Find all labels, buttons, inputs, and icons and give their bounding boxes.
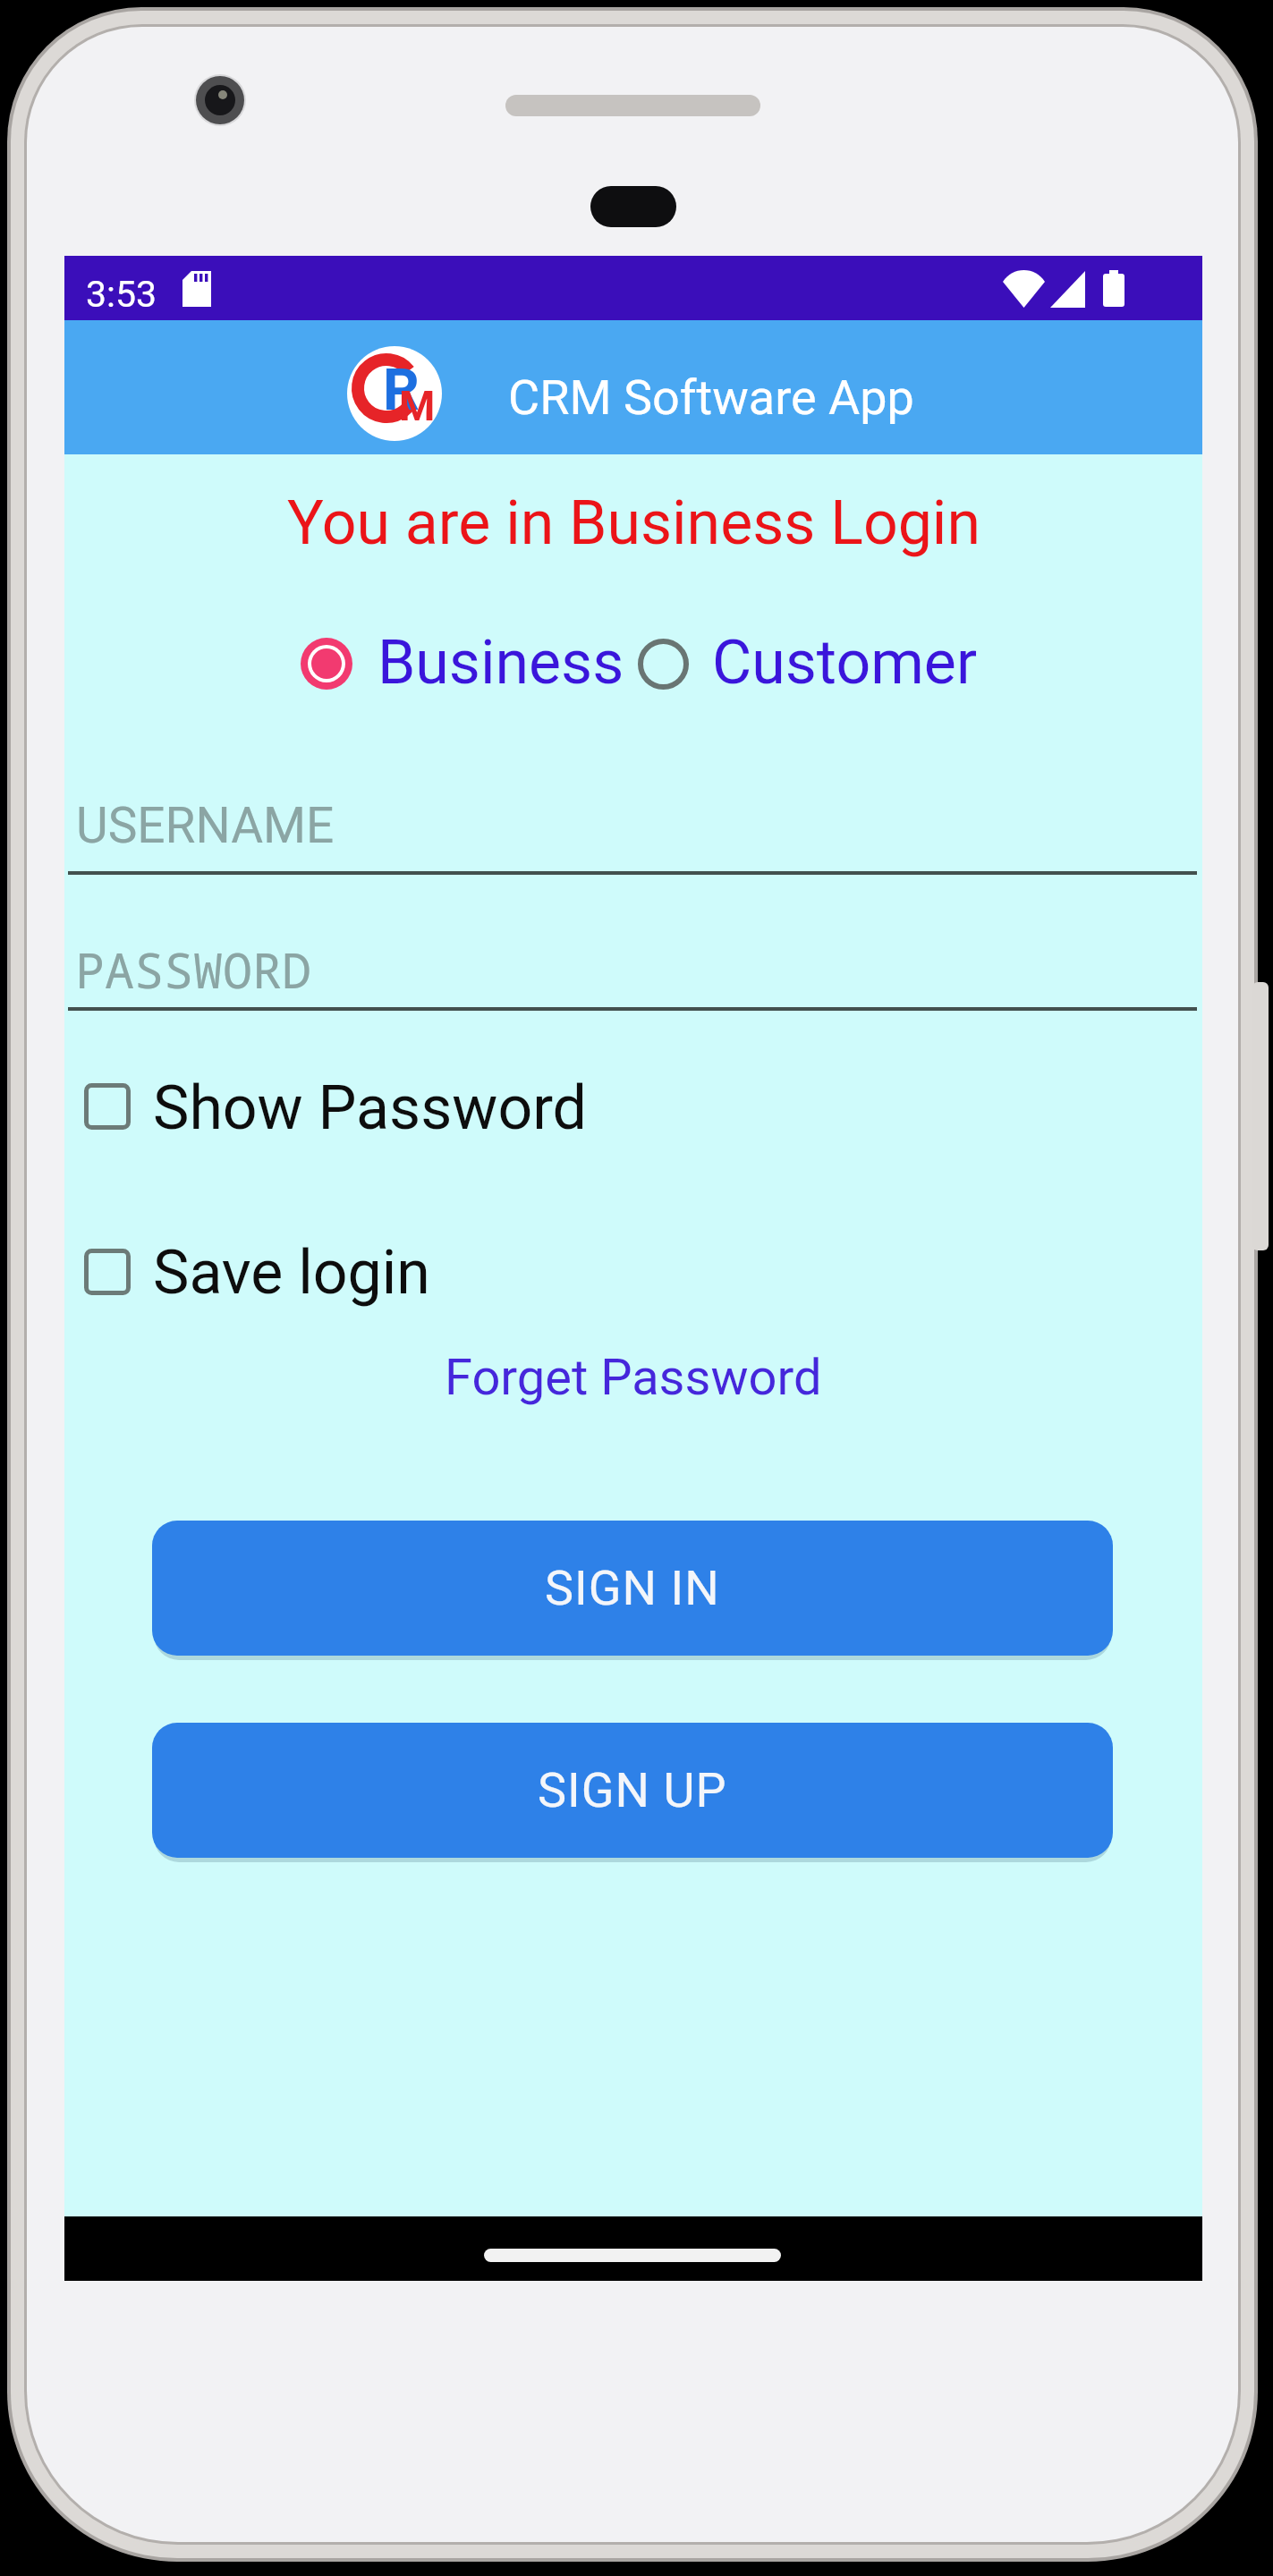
button[interactable]: [638, 639, 689, 690]
button[interactable]: SIGN UP: [152, 1723, 1113, 1858]
button[interactable]: [84, 1249, 131, 1295]
staticText: SIGN IN: [545, 1560, 720, 1616]
button[interactable]: [84, 1083, 131, 1130]
button[interactable]: Show Password: [153, 1072, 587, 1144]
staticText: USERNAME: [76, 797, 335, 854]
button[interactable]: [68, 914, 1197, 1011]
staticText: 3:53: [86, 273, 157, 316]
staticText: You are in Business Login: [287, 487, 980, 559]
button[interactable]: Forget Password: [445, 1348, 822, 1407]
button[interactable]: [301, 638, 352, 690]
staticText: PASSWORD: [75, 936, 312, 1003]
button[interactable]: Save login: [153, 1237, 430, 1309]
staticText: M: [399, 382, 436, 430]
staticText: R: [383, 357, 420, 424]
button[interactable]: [68, 778, 1197, 875]
button[interactable]: SIGN IN: [152, 1521, 1113, 1656]
button[interactable]: Customer: [712, 627, 977, 699]
staticText: CRM Software App: [508, 369, 914, 426]
staticText: SIGN UP: [538, 1762, 727, 1818]
button[interactable]: Business: [378, 627, 624, 699]
